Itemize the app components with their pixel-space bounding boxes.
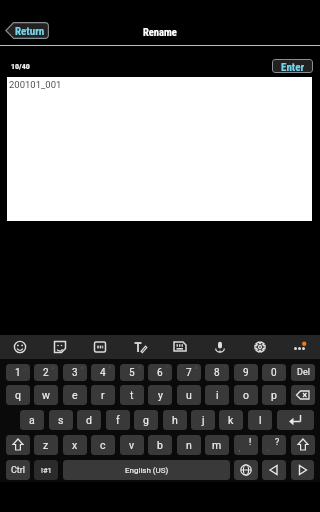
button[interactable]: 2 <box>34 364 58 381</box>
button[interactable]: 1 <box>6 364 30 381</box>
button[interactable]: s <box>49 410 73 430</box>
button[interactable]: Enter <box>272 59 313 73</box>
button[interactable]: t <box>120 385 144 405</box>
staticText: % <box>138 365 141 370</box>
button[interactable]: Del <box>291 364 315 381</box>
button[interactable]: Text edit <box>128 335 152 359</box>
button[interactable]: r <box>91 385 115 405</box>
button[interactable]: e <box>63 385 87 405</box>
button[interactable]: z <box>34 435 58 455</box>
button[interactable]: 4 <box>91 364 115 381</box>
button[interactable]: 6 <box>148 364 172 381</box>
staticText: 8 <box>214 367 220 379</box>
button[interactable]: Backspace <box>291 385 315 405</box>
button[interactable]: Stickers <box>48 335 72 359</box>
staticText: c <box>100 439 106 451</box>
button[interactable]: j <box>191 410 215 430</box>
staticText: n <box>186 439 192 451</box>
button[interactable]: 5 <box>120 364 144 381</box>
staticText: p <box>271 389 277 401</box>
button[interactable]: Clipboard <box>168 335 192 359</box>
button[interactable]: d <box>77 410 101 430</box>
button[interactable]: x <box>63 435 87 455</box>
staticText: , <box>239 445 241 453</box>
button[interactable]: Return <box>5 22 49 39</box>
staticText: 200101_001 <box>9 79 62 90</box>
button[interactable]: b <box>148 435 172 455</box>
button[interactable]: i <box>205 385 229 405</box>
staticText: 3 <box>72 367 78 379</box>
button[interactable]: w <box>34 385 58 405</box>
staticText: !#1 <box>41 466 52 475</box>
button[interactable]: 8 <box>205 364 229 381</box>
button[interactable]: Language <box>234 460 258 480</box>
staticText: f <box>116 414 120 426</box>
staticText: g <box>143 414 149 426</box>
staticText: ^ <box>167 365 169 370</box>
staticText: English (US) <box>125 466 169 475</box>
button[interactable]: a <box>20 410 44 430</box>
button[interactable]: Voice input <box>208 335 232 359</box>
button[interactable]: 0 <box>262 364 286 381</box>
staticText: 6 <box>157 367 163 379</box>
button[interactable]: u <box>177 385 201 405</box>
staticText: Rename <box>143 26 177 38</box>
button[interactable]: o <box>234 385 258 405</box>
staticText: Enter <box>281 61 305 73</box>
staticText: h <box>172 414 178 426</box>
button[interactable]: c <box>91 435 115 455</box>
staticText: @ <box>51 365 55 370</box>
button[interactable]: 3 <box>63 364 87 381</box>
staticText: a <box>29 414 35 426</box>
button[interactable]: 200101_001 <box>7 77 312 221</box>
staticText: 4 <box>100 367 106 379</box>
staticText: 1 <box>15 367 21 379</box>
button[interactable]: m <box>205 435 229 455</box>
button[interactable]: g <box>134 410 158 430</box>
staticText: d <box>86 414 92 426</box>
button[interactable]: . <box>262 435 286 455</box>
button[interactable]: v <box>120 435 144 455</box>
button[interactable]: Shift <box>291 435 315 455</box>
button[interactable]: Move cursor right <box>291 460 314 480</box>
button[interactable]: q <box>6 385 30 405</box>
button[interactable]: Shift <box>6 435 30 455</box>
staticText: 9 <box>243 367 249 379</box>
button[interactable]: !#1 <box>34 460 58 480</box>
staticText: ? <box>275 437 280 448</box>
button[interactable]: k <box>219 410 243 430</box>
staticText: # <box>81 365 84 370</box>
staticText: t <box>130 389 134 401</box>
staticText: v <box>129 439 135 451</box>
button[interactable]: y <box>148 385 172 405</box>
staticText: s <box>58 414 64 426</box>
button[interactable]: Move cursor left <box>262 460 286 480</box>
staticText: 5 <box>129 367 135 379</box>
button[interactable]: 9 <box>234 364 258 381</box>
button[interactable]: l <box>248 410 272 430</box>
button[interactable]: Ctrl <box>6 460 30 480</box>
staticText: ) <box>281 365 283 370</box>
button[interactable]: p <box>262 385 286 405</box>
staticText: 10/40 <box>11 62 30 71</box>
button[interactable]: Emoji <box>8 335 32 359</box>
button[interactable]: 7 <box>177 364 201 381</box>
staticText: ! <box>249 437 252 448</box>
staticText: Ctrl <box>11 465 26 476</box>
staticText: r <box>101 389 105 401</box>
staticText: b <box>157 439 163 451</box>
button[interactable]: Settings <box>248 335 272 359</box>
button[interactable]: Enter <box>277 410 314 430</box>
staticText: 0 <box>271 367 277 379</box>
button[interactable]: h <box>163 410 187 430</box>
button[interactable]: n <box>177 435 201 455</box>
staticText: e <box>72 389 78 401</box>
button[interactable]: English (US) <box>63 460 230 480</box>
button[interactable]: , <box>234 435 258 455</box>
button[interactable]: More <box>288 335 312 359</box>
staticText: x <box>72 439 78 451</box>
button[interactable]: f <box>106 410 130 430</box>
staticText: y <box>158 389 163 401</box>
staticText: q <box>15 389 21 401</box>
button[interactable]: GIF <box>88 335 112 359</box>
